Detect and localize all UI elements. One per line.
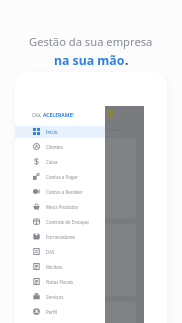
button[interactable]: Meus Produtos xyxy=(15,199,105,214)
staticText: Gestão da sua empresa xyxy=(29,34,153,49)
staticText: Início xyxy=(46,129,58,135)
staticText: . xyxy=(125,52,129,69)
button[interactable]: Clientes xyxy=(15,139,105,154)
staticText: Clientes xyxy=(46,144,63,150)
staticText: Meus Produtos xyxy=(46,204,78,210)
staticText: Serviços xyxy=(46,294,64,300)
button[interactable]: Perfil xyxy=(15,304,105,319)
button[interactable]: Recibos xyxy=(15,259,105,274)
button[interactable]: Olá, xyxy=(32,112,74,119)
staticText: Perfil xyxy=(46,309,57,315)
staticText: DAS xyxy=(46,249,55,255)
button[interactable]: Contas a Pagar xyxy=(15,169,105,184)
staticText: Controle de Estoque xyxy=(46,219,89,225)
staticText: Notas Fiscais xyxy=(46,279,74,285)
button[interactable]: Notas Fiscais xyxy=(15,274,105,289)
staticText: Contas a Pagar xyxy=(46,174,78,180)
button[interactable]: Menu xyxy=(108,110,114,117)
button[interactable]: Controle de Estoque xyxy=(15,214,105,229)
staticText: Caixa xyxy=(46,159,58,165)
staticText: Recibos xyxy=(46,264,63,270)
staticText: na sua mão xyxy=(54,52,125,69)
button[interactable]: Fornecedores xyxy=(15,229,105,244)
staticText: Olá, xyxy=(32,112,43,119)
button[interactable]: Serviços xyxy=(15,289,105,304)
staticText: Contas a Receber xyxy=(46,189,83,195)
button[interactable]: Caixa xyxy=(15,154,105,169)
button[interactable]: Contas a Receber xyxy=(15,184,105,199)
button[interactable]: Início xyxy=(15,124,105,139)
staticText: Fornecedores xyxy=(46,234,75,240)
staticText: ACELERAME! xyxy=(43,112,74,119)
button[interactable]: DAS xyxy=(15,244,105,259)
